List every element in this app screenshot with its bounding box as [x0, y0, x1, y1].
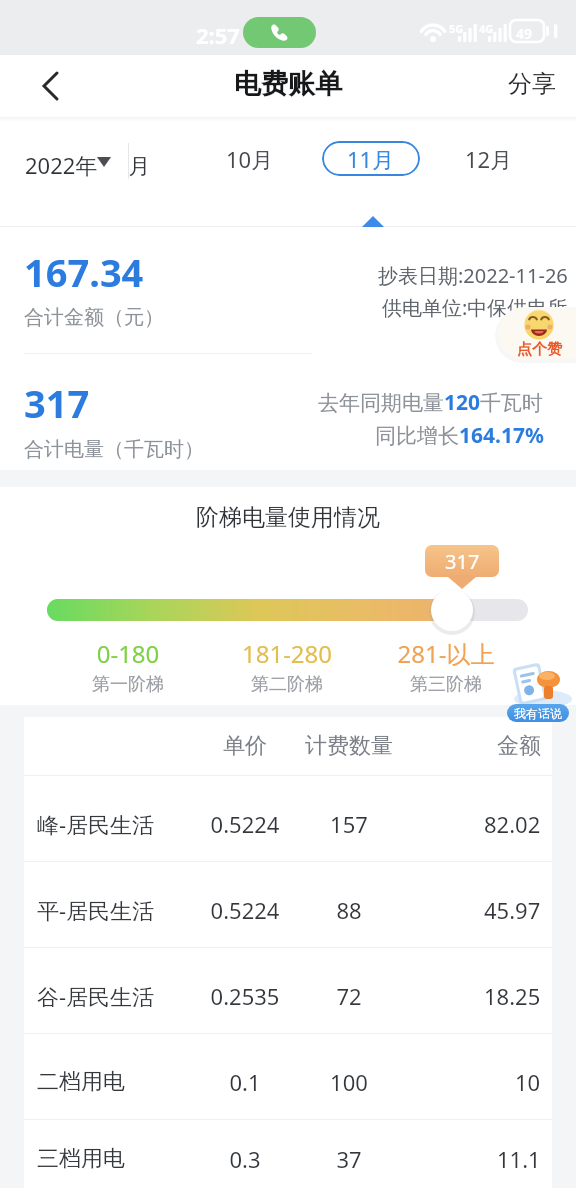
staticText: 单价 — [221, 732, 269, 760]
staticText: 2022年 — [25, 150, 98, 180]
staticText: 10月 — [226, 144, 274, 174]
staticText: 12月 — [465, 144, 513, 174]
staticText: 第二阶梯 — [251, 673, 323, 696]
staticText: 二档用电 — [37, 1068, 125, 1096]
staticText: 0.2535 — [196, 981, 294, 1011]
button[interactable]: 点个赞 — [498, 307, 576, 359]
button[interactable]: 11月 — [322, 141, 420, 176]
staticText: 0.5224 — [196, 809, 294, 839]
staticText: 0.3 — [196, 1144, 294, 1174]
button[interactable]: 分享 — [500, 61, 564, 107]
staticText: 18.25 — [484, 981, 541, 1011]
staticText: 88 — [304, 895, 394, 925]
staticText: 峰-居民生活 — [37, 809, 155, 839]
staticText: 同比增长164.17% — [375, 421, 544, 450]
staticText: 计费数量 — [304, 732, 394, 760]
button[interactable]: 10月 — [200, 139, 300, 179]
button[interactable]: 平-居民生活 — [24, 861, 552, 947]
staticText: 45.97 — [484, 895, 541, 925]
staticText: 49 — [516, 24, 533, 43]
staticText: 4G — [479, 21, 494, 36]
staticText: 分享 — [508, 69, 556, 99]
staticText: 82.02 — [484, 809, 541, 839]
staticText: 9月 — [116, 150, 151, 180]
staticText: 金额 — [497, 732, 541, 760]
staticText: 5G — [449, 21, 464, 36]
staticText: 合计金额（元） — [24, 305, 164, 330]
staticText: 11.1 — [497, 1144, 541, 1174]
staticText: 11月 — [347, 144, 395, 174]
staticText: 三档用电 — [37, 1145, 125, 1173]
staticText: 317 — [24, 377, 90, 429]
staticText: 0.5224 — [196, 895, 294, 925]
button[interactable]: 12月 — [439, 139, 539, 179]
staticText: 181-280 — [227, 637, 347, 670]
staticText: 2:57 — [196, 20, 240, 50]
button[interactable]: 二档用电 — [24, 1033, 552, 1119]
staticText: 157 — [304, 809, 394, 839]
staticText: 37 — [304, 1144, 394, 1174]
button[interactable] — [243, 17, 316, 48]
staticText: 281-以上 — [386, 637, 506, 670]
button[interactable]: 2022年 — [0, 117, 128, 197]
button[interactable] — [20, 59, 70, 113]
staticText: 0-180 — [68, 637, 188, 670]
staticText: 抄表日期:2022-11-26 — [378, 262, 568, 289]
staticText: 合计电量（千瓦时） — [24, 437, 204, 462]
staticText: 阶梯电量使用情况 — [196, 503, 380, 532]
button[interactable]: 三档用电 — [24, 1119, 552, 1188]
staticText: 我有话说 — [514, 706, 562, 721]
button[interactable]: 峰-居民生活 — [24, 775, 552, 861]
staticText: 第一阶梯 — [92, 673, 164, 696]
staticText: 0.1 — [196, 1067, 294, 1097]
staticText: 谷-居民生活 — [37, 981, 155, 1011]
staticText: 平-居民生活 — [37, 895, 155, 925]
staticText: 167.34 — [24, 246, 144, 298]
staticText: 点个赞 — [517, 340, 562, 359]
staticText: 去年同期电量120千瓦时 — [318, 388, 544, 417]
button[interactable]: 我有话说 — [500, 660, 576, 722]
button[interactable]: 谷-居民生活 — [24, 947, 552, 1033]
staticText: 供电单位:中保供电所 — [382, 294, 568, 321]
staticText: 317 — [445, 548, 480, 575]
staticText: 电费账单 — [234, 67, 342, 101]
staticText: 第三阶梯 — [410, 673, 482, 696]
staticText: 10 — [515, 1067, 541, 1097]
staticText: 100 — [304, 1067, 394, 1097]
staticText: 72 — [304, 981, 394, 1011]
